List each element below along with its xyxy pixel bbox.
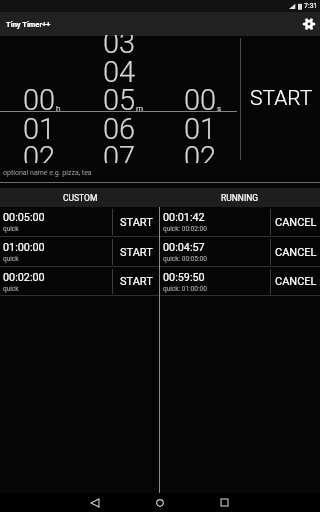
button[interactable]: RUNNING bbox=[160, 188, 320, 207]
staticText: 00:01:42 bbox=[163, 211, 205, 224]
button[interactable]: 00:04:57 bbox=[160, 237, 320, 267]
staticText: quick: 00:02:00 bbox=[163, 225, 207, 233]
staticText: CANCEL bbox=[275, 216, 317, 229]
button[interactable]: Recents bbox=[210, 493, 238, 512]
button[interactable]: 00:01:42 bbox=[160, 207, 320, 237]
staticText: 00 bbox=[23, 83, 56, 117]
button[interactable]: Back bbox=[81, 493, 109, 512]
staticText: START bbox=[250, 86, 313, 111]
button[interactable]: Settings bbox=[299, 14, 319, 34]
staticText: Tiny Timer++ bbox=[6, 20, 51, 29]
staticText: 06 bbox=[103, 112, 136, 146]
staticText: 00 bbox=[184, 83, 217, 117]
staticText: 05 bbox=[103, 83, 136, 117]
button[interactable]: CUSTOM bbox=[0, 188, 160, 207]
staticText: 07 bbox=[103, 140, 136, 163]
staticText: 02 bbox=[23, 140, 56, 163]
staticText: 00:05:00 bbox=[3, 211, 45, 224]
staticText: 02 bbox=[184, 140, 217, 163]
staticText: RUNNING bbox=[221, 193, 259, 203]
button[interactable]: 00:02:00 bbox=[0, 267, 160, 296]
staticText: 01:00:00 bbox=[3, 241, 45, 254]
staticText: h bbox=[56, 104, 61, 113]
staticText: optional name e.g. pizza, tea bbox=[3, 169, 92, 177]
staticText: START bbox=[120, 275, 153, 288]
staticText: 04 bbox=[103, 55, 136, 89]
staticText: 03 bbox=[103, 35, 136, 60]
staticText: START bbox=[120, 246, 153, 259]
button[interactable]: 00:59:50 bbox=[160, 267, 320, 296]
staticText: quick: 00:05:00 bbox=[163, 255, 207, 263]
staticText: 7:31 bbox=[304, 2, 318, 10]
staticText: START bbox=[120, 216, 153, 229]
staticText: 00:04:57 bbox=[163, 241, 205, 254]
button[interactable]: Home bbox=[146, 493, 174, 512]
staticText: CUSTOM bbox=[63, 193, 98, 203]
staticText: CANCEL bbox=[275, 275, 317, 288]
staticText: quick: 01:00:00 bbox=[163, 285, 207, 293]
staticText: s bbox=[217, 104, 222, 113]
staticText: 00:02:00 bbox=[3, 271, 45, 284]
button[interactable]: START bbox=[241, 35, 320, 163]
staticText: CANCEL bbox=[275, 246, 317, 259]
staticText: 01 bbox=[184, 112, 217, 146]
staticText: m bbox=[136, 104, 144, 113]
button[interactable]: 00:05:00 bbox=[0, 207, 160, 237]
staticText: quick bbox=[3, 285, 19, 293]
staticText: 01 bbox=[23, 112, 56, 146]
staticText: quick bbox=[3, 255, 19, 263]
button[interactable]: 01:00:00 bbox=[0, 237, 160, 267]
staticText: quick bbox=[3, 225, 19, 233]
staticText: 00:59:50 bbox=[163, 271, 205, 284]
